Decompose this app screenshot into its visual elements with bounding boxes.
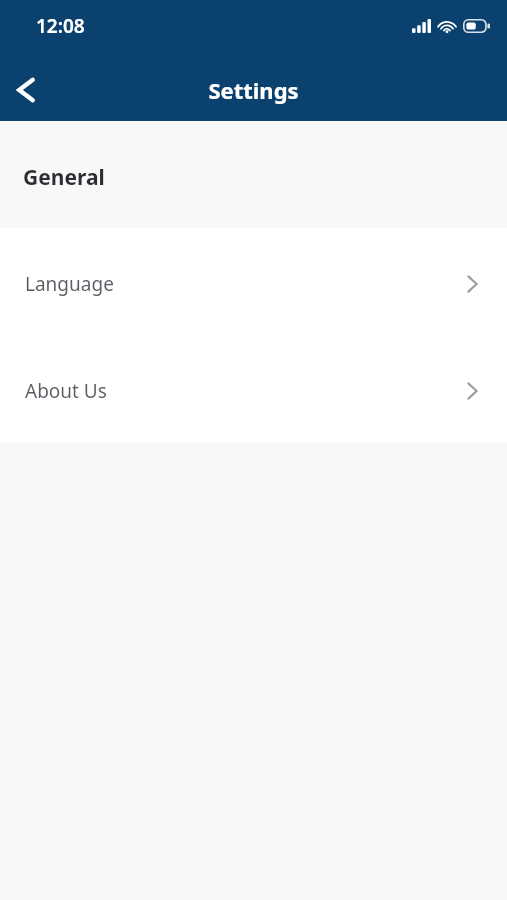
staticText: About Us [25, 378, 107, 404]
staticText: Settings [0, 75, 507, 105]
button[interactable]: Back [0, 64, 52, 116]
staticText: 12:08 [36, 13, 85, 39]
staticText: General [23, 163, 105, 192]
staticText: Language [25, 271, 114, 297]
button[interactable]: About Us [0, 363, 507, 418]
button[interactable]: Language [0, 256, 507, 311]
